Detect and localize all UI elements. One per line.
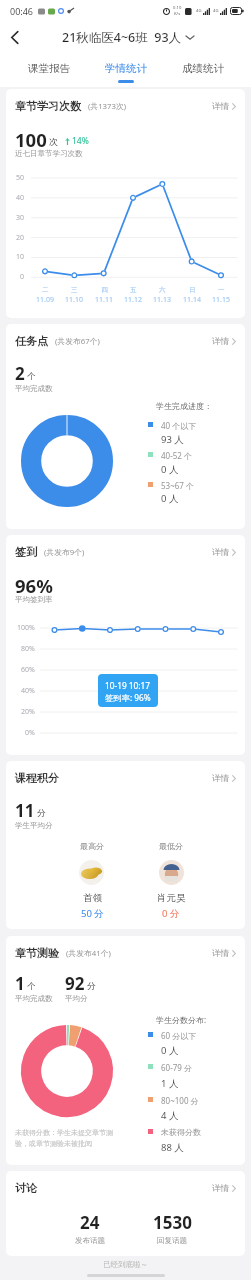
staticText: 未获得分数: [161, 1127, 201, 1137]
staticText: 讨论: [15, 1181, 37, 1195]
staticText: 1530: [153, 1211, 192, 1234]
staticText: 详情: [212, 948, 229, 959]
staticText: 0: [20, 272, 25, 282]
staticText: 93 人: [161, 433, 184, 446]
staticText: 日: [189, 286, 196, 294]
button[interactable]: 详情: [212, 101, 236, 112]
staticText: K/s: [174, 11, 181, 17]
staticText: 88 人: [161, 1141, 184, 1154]
staticText: 40-52 个: [161, 450, 192, 461]
staticText: 21秋临医4~6班 93人: [62, 29, 182, 46]
staticText: 80%: [21, 644, 35, 654]
staticText: (共发布41个): [66, 948, 111, 959]
staticText: 11: [15, 799, 35, 821]
staticText: 平均完成数: [15, 994, 53, 1003]
staticText: 0.10: [173, 5, 182, 11]
staticText: 平均分: [65, 994, 88, 1003]
staticText: 近七日章节学习次数: [15, 149, 83, 158]
staticText: 2: [15, 362, 25, 384]
staticText: 二: [42, 286, 49, 294]
staticText: 11.10: [65, 295, 83, 305]
staticText: 回复话题: [157, 1236, 187, 1245]
staticText: 签到率: 96%: [105, 692, 151, 703]
staticText: 成绩统计: [182, 62, 224, 75]
staticText: 0 人: [161, 1044, 179, 1057]
staticText: 最低分: [159, 841, 183, 851]
staticText: 20%: [21, 707, 35, 717]
staticText: 学生平均分: [15, 821, 53, 830]
staticText: 学情统计: [105, 62, 147, 75]
staticText: 章节测验: [15, 946, 59, 960]
staticText: 20: [16, 233, 25, 243]
staticText: 50: [16, 173, 25, 183]
staticText: 0 分: [162, 907, 180, 920]
staticText: 详情: [212, 547, 229, 558]
staticText: 60 分以下: [161, 1030, 197, 1041]
staticText: 课程积分: [15, 771, 59, 785]
staticText: 11.15: [212, 295, 230, 305]
staticText: 80~100 分: [161, 1095, 199, 1106]
staticText: 发布话题: [75, 1236, 105, 1245]
staticText: 课堂报告: [28, 62, 70, 75]
staticText: 肖元昊: [157, 892, 186, 904]
staticText: 100%: [17, 623, 35, 633]
staticText: 11.11: [95, 295, 113, 305]
button[interactable]: 成绩统计: [164, 52, 241, 86]
staticText: 1: [15, 972, 25, 994]
button[interactable]: 学情统计: [87, 52, 164, 86]
staticText: 六: [159, 286, 166, 294]
button[interactable]: 详情: [212, 547, 236, 558]
staticText: 分: [87, 981, 96, 992]
staticText: 4G: [196, 8, 202, 14]
staticText: 次: [49, 136, 58, 147]
staticText: 详情: [212, 773, 229, 784]
staticText: 最高分: [80, 841, 104, 851]
staticText: 平均完成数: [15, 384, 53, 393]
button[interactable]: 详情: [212, 1183, 236, 1194]
staticText: 分: [37, 808, 46, 819]
staticText: 11.09: [36, 295, 54, 305]
staticText: 0%: [25, 728, 35, 738]
staticText: 30: [16, 213, 25, 223]
staticText: 章节学习次数: [15, 99, 81, 113]
staticText: 40 个以下: [161, 420, 197, 431]
staticText: 11.13: [153, 295, 171, 305]
staticText: 11.12: [124, 295, 142, 305]
staticText: 平均签到率: [15, 595, 53, 604]
button[interactable]: 详情: [212, 773, 236, 784]
staticText: 10-19 10:17: [105, 680, 151, 691]
staticText: (共1373次): [88, 101, 127, 112]
staticText: 24: [80, 1211, 100, 1234]
staticText: 11.14: [183, 295, 201, 305]
staticText: 92: [65, 972, 85, 994]
staticText: 任务点: [15, 334, 48, 348]
button[interactable]: 21秋临医4~6班 93人: [62, 29, 194, 46]
staticText: 一: [218, 286, 225, 294]
staticText: (共发布67个): [55, 336, 100, 347]
staticText: 100: [15, 127, 47, 150]
staticText: 40: [16, 193, 25, 203]
staticText: 14%: [72, 135, 89, 147]
staticText: 首领: [83, 892, 102, 904]
staticText: 个: [27, 981, 36, 992]
staticText: 详情: [212, 1183, 229, 1194]
staticText: 1 人: [161, 1077, 179, 1090]
staticText: 10: [16, 252, 25, 262]
staticText: 60%: [21, 665, 35, 675]
button[interactable]: Back: [0, 22, 30, 52]
staticText: (共发布9个): [44, 547, 85, 558]
staticText: 三: [71, 286, 78, 294]
staticText: 签到: [15, 545, 37, 559]
button[interactable]: 详情: [212, 336, 236, 347]
staticText: 学生完成进度：: [156, 401, 212, 411]
staticText: 未获得分数：学生未提交章节测 验，或章节测验未被批阅: [15, 1128, 113, 1148]
staticText: 五: [130, 286, 137, 294]
staticText: 详情: [212, 101, 229, 112]
staticText: 4 人: [161, 1109, 179, 1122]
staticText: 50 分: [81, 907, 104, 920]
button[interactable]: 课堂报告: [10, 52, 87, 86]
staticText: 四: [101, 286, 108, 294]
button[interactable]: 详情: [212, 948, 236, 959]
staticText: 详情: [212, 336, 229, 347]
staticText: 学生分数分布:: [156, 1014, 207, 1025]
